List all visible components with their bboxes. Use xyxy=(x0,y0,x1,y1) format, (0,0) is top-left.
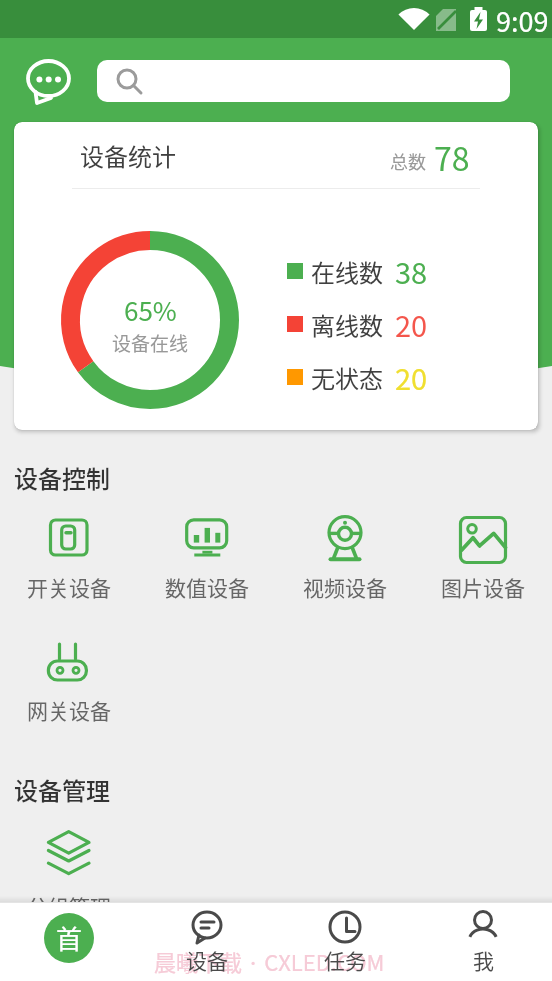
staticText: 78 xyxy=(434,134,470,180)
staticText: 在线数 xyxy=(311,254,383,289)
button[interactable]: 视频设备 xyxy=(276,506,414,608)
staticText: 设备控制 xyxy=(14,460,110,495)
staticText: 设备 xyxy=(186,945,228,975)
staticText: 设备在线 xyxy=(112,329,189,357)
staticText: 总数 xyxy=(390,148,426,174)
staticText: 晨曦下载 · CXLED.COM xyxy=(154,945,385,977)
staticText: 首 xyxy=(56,919,83,957)
button[interactable]: 网关设备 xyxy=(0,628,138,730)
staticText: 无状态 xyxy=(311,360,383,395)
button[interactable]: 任务 xyxy=(276,902,414,981)
staticText: 网关设备 xyxy=(27,695,111,725)
staticText: 图片设备 xyxy=(441,572,525,602)
staticText: 38 xyxy=(395,250,428,292)
staticText: 我 xyxy=(473,945,494,975)
staticText: 分组管理 xyxy=(27,891,111,919)
button[interactable]: 图片设备 xyxy=(414,506,552,608)
staticText: 数值设备 xyxy=(165,572,249,602)
button[interactable]: 开关设备 xyxy=(0,506,138,608)
staticText: 视频设备 xyxy=(303,572,387,602)
button[interactable]: 数值设备 xyxy=(138,506,276,608)
button[interactable]: 我 xyxy=(414,902,552,981)
staticText: 设备管理 xyxy=(14,772,110,807)
staticText: 任务 xyxy=(324,945,366,975)
staticText: 开关设备 xyxy=(27,572,111,602)
staticText: 9:09 xyxy=(496,1,549,40)
button[interactable] xyxy=(97,60,510,102)
button[interactable]: 分组管理 xyxy=(0,817,138,919)
button[interactable]: 设备 xyxy=(138,902,276,981)
button[interactable] xyxy=(26,59,74,107)
button[interactable]: 首 xyxy=(44,913,94,963)
staticText: 20 xyxy=(395,303,428,345)
staticText: 设备统计 xyxy=(80,138,176,173)
staticText: 65% xyxy=(124,291,177,329)
staticText: 20 xyxy=(395,356,428,398)
staticText: 离线数 xyxy=(311,307,383,342)
